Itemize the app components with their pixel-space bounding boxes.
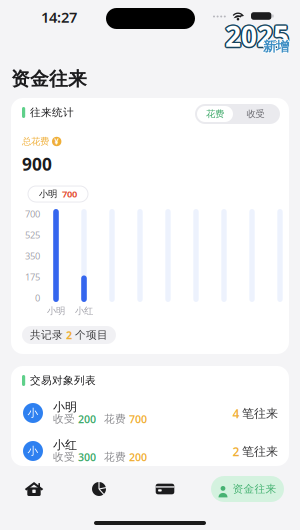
- staticText: 4: [232, 405, 239, 421]
- staticText: 525: [25, 229, 40, 241]
- staticText: 资金往来: [11, 67, 87, 90]
- staticText: 收受: [53, 450, 75, 463]
- staticText: 200: [129, 450, 147, 464]
- staticText: 300: [78, 450, 96, 464]
- staticText: 2: [66, 328, 72, 342]
- staticText: 收受: [246, 108, 264, 120]
- staticText: 175: [25, 271, 40, 283]
- staticText: 2025: [226, 18, 290, 56]
- staticText: 700: [62, 188, 77, 200]
- staticText: 新增: [263, 37, 289, 54]
- staticText: 小红: [75, 305, 93, 317]
- staticText: 新增: [264, 38, 290, 55]
- staticText: 新增: [263, 38, 289, 55]
- staticText: 2025: [225, 17, 289, 55]
- staticText: 新增: [262, 39, 288, 55]
- staticText: 共记录: [30, 328, 63, 341]
- staticText: 2025: [226, 17, 290, 55]
- button[interactable]: 首页: [6, 472, 62, 506]
- staticText: 2025: [226, 16, 290, 54]
- staticText: 新增: [262, 38, 288, 54]
- button[interactable]: 资金往来: [211, 476, 284, 502]
- staticText: 小红: [53, 438, 77, 452]
- staticText: 新增: [264, 38, 290, 54]
- staticText: 总花费: [22, 136, 49, 147]
- staticText: 2025: [225, 19, 289, 56]
- staticText: 0: [35, 292, 40, 304]
- staticText: 200: [78, 412, 96, 426]
- staticText: 小明: [53, 400, 77, 414]
- staticText: 700: [25, 208, 40, 220]
- staticText: 新增: [264, 39, 290, 55]
- staticText: ¥: [54, 136, 59, 147]
- staticText: 2025: [224, 18, 288, 56]
- button[interactable]: 收受: [233, 106, 278, 122]
- staticText: 350: [25, 250, 40, 262]
- staticText: 900: [22, 152, 52, 175]
- staticText: 新增: [262, 38, 288, 55]
- button[interactable]: 账单: [137, 472, 193, 506]
- button[interactable]: 小: [0, 0, 300, 530]
- button[interactable]: 小: [0, 0, 300, 530]
- staticText: 花费: [104, 450, 126, 463]
- button[interactable]: 统计: [71, 472, 127, 506]
- staticText: 花费: [104, 412, 126, 425]
- staticText: 小: [27, 444, 38, 457]
- staticText: 个项目: [75, 328, 108, 341]
- staticText: 小: [27, 406, 38, 419]
- staticText: 资金往来: [232, 482, 276, 495]
- staticText: 2025: [224, 17, 288, 55]
- staticText: 往来统计: [30, 106, 74, 119]
- staticText: 14:27: [41, 7, 77, 27]
- staticText: 2: [232, 443, 239, 459]
- staticText: 小明: [47, 305, 65, 317]
- staticText: 花费: [206, 108, 224, 120]
- staticText: 笔往来: [242, 406, 278, 421]
- staticText: 交易对象列表: [30, 374, 96, 387]
- staticText: 新增: [263, 39, 289, 55]
- staticText: 收受: [53, 412, 75, 425]
- button[interactable]: 花费: [197, 106, 233, 122]
- staticText: 700: [129, 412, 147, 426]
- staticText: 2025: [225, 16, 289, 53]
- staticText: 小明: [39, 188, 57, 200]
- staticText: 2025: [224, 16, 288, 54]
- staticText: 笔往来: [242, 444, 278, 459]
